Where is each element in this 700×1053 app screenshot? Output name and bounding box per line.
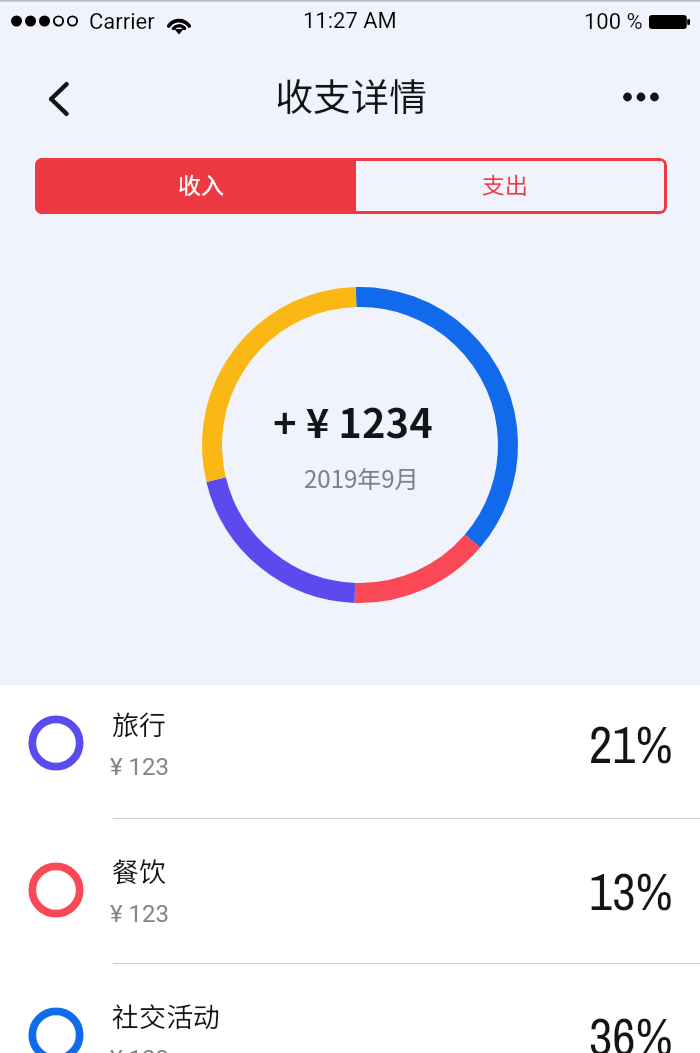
staticText: 支出 — [482, 167, 528, 200]
button[interactable]: Back — [30, 75, 78, 123]
button[interactable]: 支出 — [356, 158, 667, 214]
staticText: 餐饮 — [112, 851, 166, 890]
staticText: 11:27 AM — [303, 8, 397, 34]
staticText: 21% — [589, 710, 673, 779]
button[interactable]: 旅行 — [0, 685, 700, 818]
staticText: 13% — [589, 857, 673, 926]
staticText: ¥ 123 — [110, 753, 170, 781]
staticText: 收支详情 — [275, 67, 428, 122]
staticText: Carrier — [89, 9, 155, 35]
staticText: 收入 — [178, 167, 224, 200]
button[interactable]: 收入 — [35, 158, 356, 214]
button[interactable]: 社交活动 — [0, 964, 700, 1053]
button[interactable]: More options — [614, 75, 668, 119]
staticText: 2019年9月 — [304, 460, 419, 495]
staticText: 旅行 — [112, 704, 166, 743]
button[interactable]: 餐饮 — [0, 819, 700, 963]
staticText: ¥ 123 — [110, 1045, 170, 1053]
staticText: 100 % — [584, 9, 643, 35]
staticText: ¥ 123 — [110, 900, 170, 928]
staticText: 36% — [589, 1002, 673, 1053]
staticText: + ¥ 1234 — [273, 392, 433, 450]
staticText: 社交活动 — [112, 996, 220, 1035]
